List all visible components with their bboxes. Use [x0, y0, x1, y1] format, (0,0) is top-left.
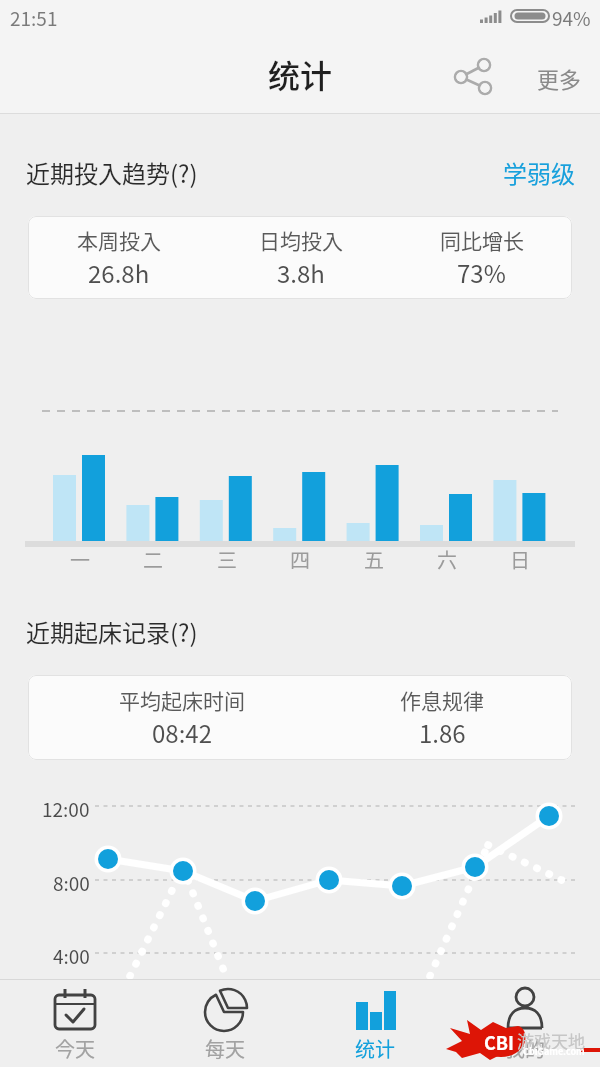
staticText: 1.86 — [419, 715, 466, 750]
staticText: 本周投入 — [77, 225, 161, 255]
staticText: 统计 — [268, 51, 333, 97]
button[interactable]: 每天 — [150, 980, 300, 1067]
staticText: 3.8h — [277, 255, 325, 290]
button[interactable]: 平均起床时间 — [28, 675, 572, 760]
staticText: 六 — [437, 545, 457, 571]
staticText: 73% — [457, 255, 506, 290]
staticText: 更多 — [537, 62, 582, 94]
staticText: CBI — [484, 1029, 515, 1055]
staticText: 8:00 — [53, 869, 90, 893]
staticText: 近期起床记录(?) — [26, 614, 198, 649]
staticText: 二 — [143, 545, 163, 571]
staticText: 五 — [364, 545, 384, 571]
staticText: 一 — [70, 545, 90, 571]
button[interactable]: 学弱级 — [494, 152, 584, 192]
staticText: 21:51 — [10, 4, 58, 32]
staticText: 近期投入趋势(?) — [26, 155, 198, 190]
staticText: 三 — [217, 545, 237, 571]
staticText: 平均起床时间 — [119, 685, 245, 715]
staticText: 学弱级 — [503, 155, 575, 190]
staticText: 94% — [552, 4, 591, 32]
staticText: 游戏天地 — [517, 1028, 585, 1053]
staticText: 同比增长 — [440, 225, 524, 255]
staticText: 4:00 — [53, 942, 90, 966]
staticText: 四 — [290, 545, 310, 571]
button[interactable]: 更多 — [524, 58, 594, 98]
staticText: 今天 — [55, 1034, 95, 1063]
staticText: CbiGame.com — [523, 1045, 585, 1058]
button[interactable] — [445, 52, 497, 102]
staticText: 每天 — [205, 1034, 245, 1063]
button[interactable]: 本周投入 — [28, 216, 572, 299]
staticText: 我的 — [505, 1034, 545, 1063]
button[interactable]: 我的 — [450, 980, 600, 1067]
staticText: 26.8h — [88, 255, 150, 290]
staticText: 统计 — [355, 1034, 395, 1063]
staticText: 日均投入 — [259, 225, 343, 255]
staticText: 日 — [510, 545, 530, 571]
staticText: 作息规律 — [400, 685, 484, 715]
button[interactable]: 统计 — [300, 980, 450, 1067]
button[interactable]: 今天 — [0, 980, 150, 1067]
staticText: 12:00 — [42, 795, 90, 819]
staticText: 08:42 — [152, 715, 212, 750]
